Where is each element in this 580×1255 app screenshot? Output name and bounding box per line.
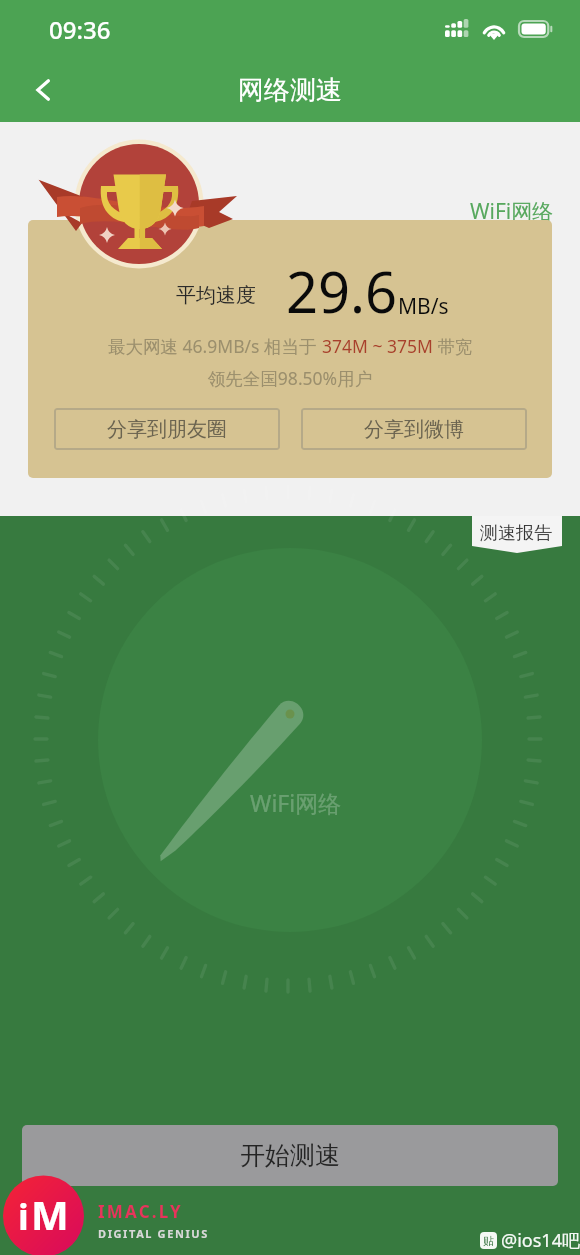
staticText: 分享到微博 (364, 417, 464, 442)
staticText: 网络测速 (238, 74, 342, 107)
button[interactable]: 分享到朋友圈 (54, 408, 280, 450)
other: Wi-Fi (483, 21, 505, 38)
staticText: DIGITAL GENIUS (98, 1226, 209, 1241)
button[interactable]: 分享到微博 (301, 408, 527, 450)
staticText: 分享到朋友圈 (107, 417, 227, 442)
staticText: 带宽 (433, 334, 473, 358)
staticText: 最大网速 46.9MB/s 相当于 (108, 334, 322, 358)
staticText: @ios14吧 (501, 1228, 580, 1253)
staticText: 平均速度 (176, 283, 256, 308)
other: Battery (518, 20, 552, 38)
staticText: 领先全国98.50%用户 (28, 366, 552, 390)
staticText: 09:36 (49, 13, 111, 46)
staticText: 测速报告 (480, 522, 552, 545)
staticText: IMAC.LY (98, 1200, 183, 1223)
other: Cellular signal (445, 21, 470, 37)
staticText: WiFi网络 (250, 787, 342, 818)
staticText: M (31, 1187, 69, 1241)
staticText: WiFi网络 (470, 197, 554, 226)
staticText: 374M ~ 375M (322, 334, 433, 358)
button[interactable]: 开始测速 (22, 1125, 558, 1186)
staticText: i (18, 1192, 29, 1241)
staticText: 贴 (483, 1234, 494, 1248)
staticText: 开始测速 (240, 1140, 340, 1171)
button[interactable]: 测速报告 (472, 516, 562, 553)
staticText: MB/s (398, 292, 449, 321)
staticText: 29.6 (286, 253, 398, 329)
button[interactable]: Back (22, 68, 66, 112)
